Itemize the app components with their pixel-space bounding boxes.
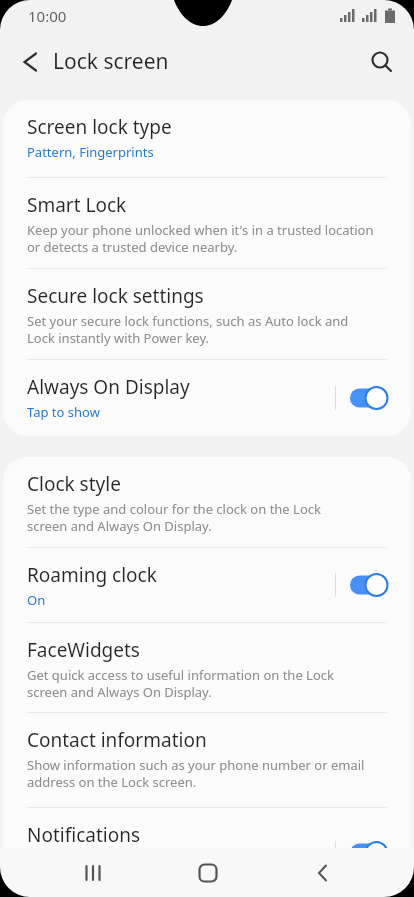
button[interactable]: Always On Display xyxy=(3,360,411,436)
staticText: Smart Lock xyxy=(27,192,127,218)
button[interactable]: Notifications xyxy=(3,808,411,897)
button[interactable] xyxy=(350,572,390,598)
staticText: Keep your phone unlocked when it's in a … xyxy=(27,221,374,256)
staticText: 10:00 xyxy=(28,6,67,26)
button[interactable]: Roaming clock xyxy=(3,548,411,622)
button[interactable] xyxy=(150,848,265,897)
button[interactable] xyxy=(368,48,414,76)
staticText: Lock screen xyxy=(53,47,169,76)
staticText: Secure lock settings xyxy=(27,283,204,309)
button[interactable]: Screen lock type xyxy=(3,100,411,177)
staticText: FaceWidgets xyxy=(27,637,140,663)
staticText: Always On Display xyxy=(27,374,190,400)
button[interactable] xyxy=(265,848,380,897)
staticText: Roaming clock xyxy=(27,562,157,588)
staticText: Show information such as your phone numb… xyxy=(27,756,365,791)
button[interactable] xyxy=(350,385,390,411)
staticText: Contact information xyxy=(27,727,207,753)
staticText: Set the type and colour for the clock on… xyxy=(27,500,321,535)
staticText: Pattern, Fingerprints xyxy=(27,143,154,161)
staticText: Set your secure lock functions, such as … xyxy=(27,312,349,347)
button[interactable] xyxy=(0,48,53,76)
button[interactable] xyxy=(35,848,150,897)
button[interactable]: FaceWidgets xyxy=(3,623,411,712)
button[interactable]: Clock style xyxy=(3,457,411,547)
staticText: Tap to show xyxy=(27,403,100,421)
button[interactable]: Contact information xyxy=(3,713,411,807)
staticText: On xyxy=(27,591,46,609)
staticText: Notifications xyxy=(27,822,141,848)
staticText: Get quick access to useful information o… xyxy=(27,666,334,701)
button[interactable]: Secure lock settings xyxy=(3,269,411,359)
button[interactable] xyxy=(350,840,390,866)
button[interactable]: Smart Lock xyxy=(3,178,411,268)
staticText: Screen lock type xyxy=(27,114,172,140)
staticText: Clock style xyxy=(27,471,121,497)
